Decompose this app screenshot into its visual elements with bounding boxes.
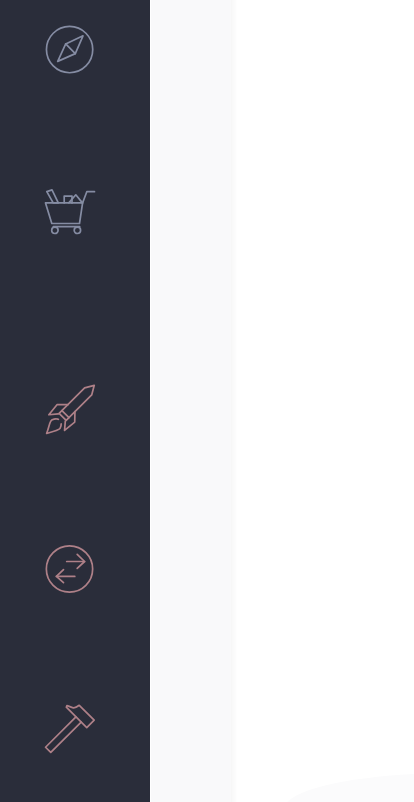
button[interactable]: Transfer <box>0 480 150 640</box>
button[interactable]: Build <box>0 640 150 802</box>
button[interactable]: Launch <box>0 320 150 480</box>
button[interactable]: Cart <box>0 160 150 320</box>
button[interactable]: Explore <box>0 0 150 160</box>
